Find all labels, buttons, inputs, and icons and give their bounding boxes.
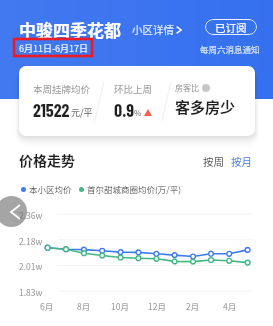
- staticText: 本小区均价: [29, 183, 72, 195]
- staticText: 2.18w: [19, 235, 43, 247]
- button[interactable]: 按周: [203, 154, 224, 169]
- staticText: 每周六消息通知: [200, 43, 260, 55]
- staticText: 10月: [111, 300, 129, 312]
- staticText: 本周挂牌均价: [33, 82, 91, 96]
- staticText: 房客比: [175, 82, 199, 94]
- staticText: 2.01w: [19, 260, 43, 272]
- staticText: 4月: [223, 300, 237, 312]
- staticText: 首尔甜城商圈均价(万/平): [87, 183, 182, 195]
- staticText: 环比上周: [114, 82, 153, 96]
- staticText: 客多房少: [175, 96, 236, 118]
- staticText: 2月: [186, 300, 200, 312]
- staticText: 小区详情: [132, 22, 174, 37]
- staticText: 21522: [33, 99, 70, 121]
- staticText: 中骏四季花都: [19, 17, 121, 42]
- button[interactable]: Back: [0, 196, 27, 227]
- staticText: 已订阅: [215, 20, 247, 35]
- staticText: 1.83w: [19, 286, 43, 298]
- button[interactable]: 按月: [231, 154, 252, 169]
- staticText: 8月: [77, 300, 91, 312]
- staticText: 2.36w: [19, 209, 43, 221]
- staticText: 0.9: [114, 99, 134, 121]
- staticText: 按月: [231, 154, 252, 169]
- staticText: 按周: [203, 154, 224, 169]
- staticText: 6月11日-6月17日: [19, 42, 89, 55]
- button[interactable]: 小区详情: [132, 22, 182, 37]
- staticText: 元/平: [71, 106, 93, 119]
- staticText: 价格走势: [19, 150, 75, 170]
- staticText: %: [134, 107, 142, 119]
- staticText: 6月: [40, 300, 54, 312]
- button[interactable]: 已订阅: [205, 19, 257, 35]
- staticText: 12月: [148, 300, 166, 312]
